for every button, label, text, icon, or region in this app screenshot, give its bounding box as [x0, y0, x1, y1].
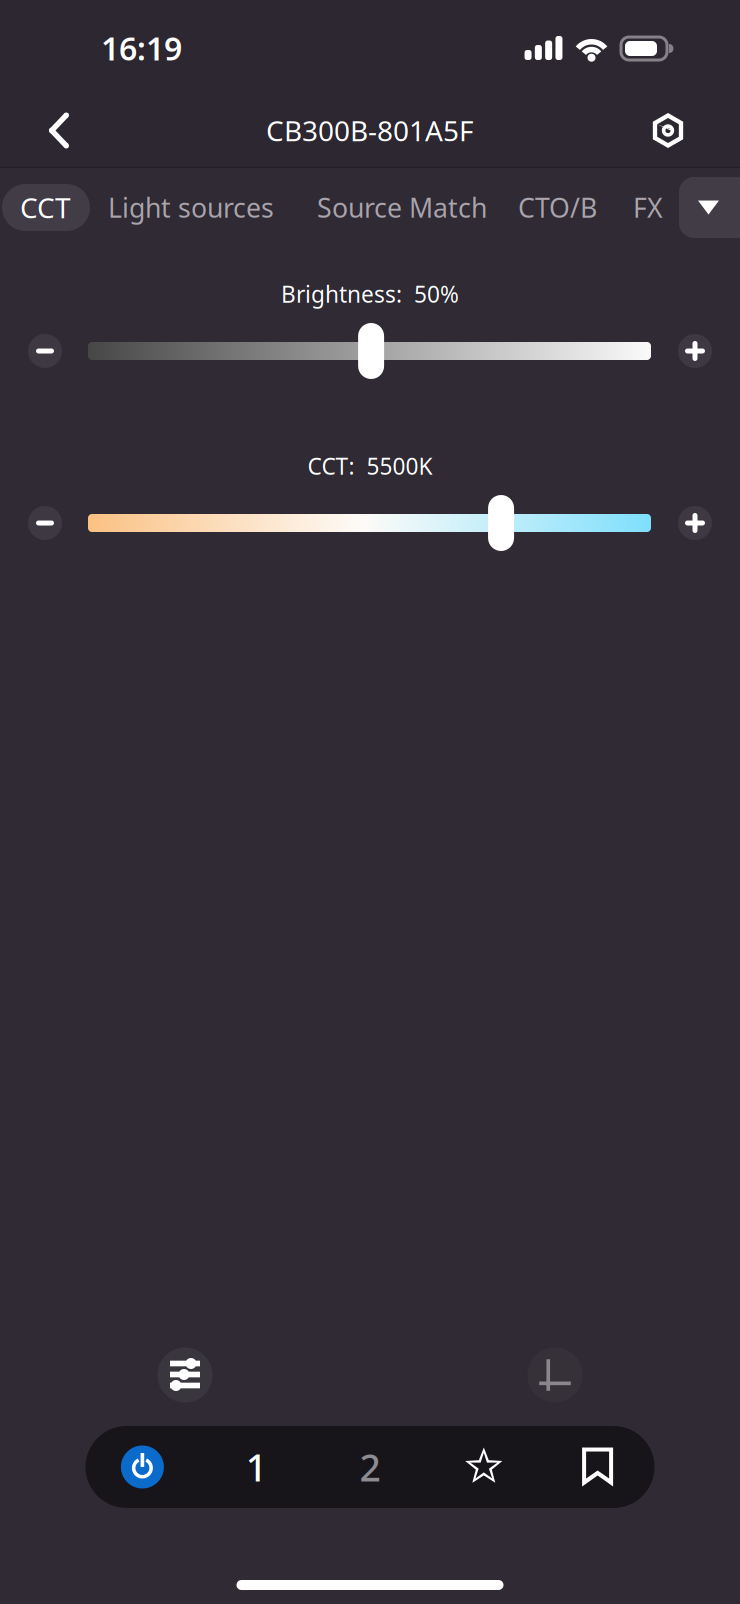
- staticText: CCT: [20, 189, 71, 226]
- button[interactable]: Increase CCT: [665, 493, 725, 553]
- button[interactable]: 1: [199, 1426, 313, 1508]
- button[interactable]: CTO/B: [502, 184, 609, 231]
- button[interactable]: Adjust settings: [148, 1338, 222, 1412]
- button[interactable]: Decrease Brightness: [15, 321, 75, 381]
- staticText: CTO/B: [518, 190, 597, 225]
- staticText: Light sources: [108, 190, 274, 225]
- button[interactable]: Back: [17, 90, 101, 170]
- staticText: 1: [246, 1442, 267, 1492]
- button[interactable]: Light sources: [90, 184, 292, 231]
- button[interactable]: Decrease CCT: [15, 493, 75, 553]
- button[interactable]: Favorites: [427, 1426, 541, 1508]
- staticText: FX: [633, 190, 663, 225]
- button[interactable]: Saved: [541, 1426, 654, 1508]
- button[interactable]: FX: [609, 184, 673, 231]
- button[interactable]: Power: [85, 1426, 199, 1508]
- staticText: Source Match: [317, 190, 487, 225]
- button[interactable]: CCT: [2, 184, 90, 231]
- button[interactable]: 2: [313, 1426, 427, 1508]
- staticText: 16:19: [101, 27, 182, 69]
- button[interactable]: Settings: [626, 90, 710, 170]
- staticText: 2: [359, 1442, 380, 1492]
- button[interactable]: Source Match: [292, 184, 502, 231]
- button[interactable]: Alignment: [518, 1338, 592, 1412]
- button[interactable]: Increase Brightness: [665, 321, 725, 381]
- staticText: Brightness: 50%: [281, 279, 459, 309]
- staticText: CCT: 5500K: [307, 451, 432, 481]
- staticText: CB300B-801A5F: [266, 112, 474, 149]
- button[interactable]: More modes: [679, 177, 740, 238]
